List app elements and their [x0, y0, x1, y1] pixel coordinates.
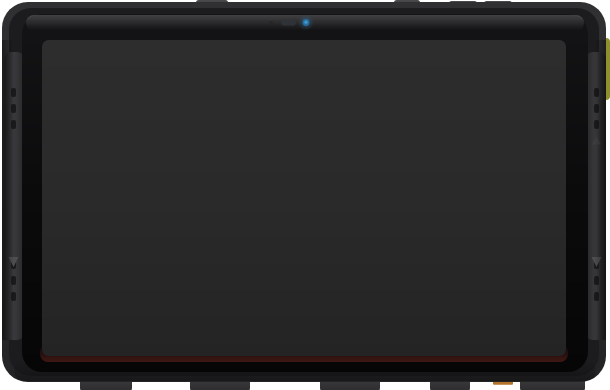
button[interactable]: Rugged tablet product photo	[0, 0, 610, 390]
